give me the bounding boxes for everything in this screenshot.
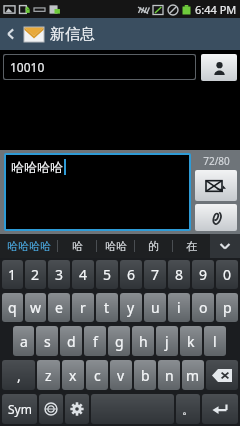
staticText: 5 xyxy=(103,265,112,284)
button[interactable]: 在 xyxy=(173,234,210,258)
staticText: 6 xyxy=(127,265,136,284)
staticText: 哈哈哈哈 xyxy=(7,239,51,253)
staticText: i xyxy=(177,298,181,317)
button[interactable]: l xyxy=(204,326,226,356)
button[interactable] xyxy=(91,394,174,424)
button[interactable]: 哈哈 xyxy=(97,234,134,258)
staticText: , xyxy=(17,366,21,385)
button[interactable]: Expand suggestions xyxy=(210,234,240,258)
staticText: q xyxy=(8,298,17,317)
button[interactable]: c xyxy=(86,360,108,390)
button[interactable]: t xyxy=(96,293,118,322)
button[interactable]: Sym xyxy=(2,394,37,424)
staticText: o xyxy=(199,298,208,317)
button[interactable]: a xyxy=(13,326,34,356)
button[interactable]: 4 xyxy=(72,260,94,289)
button[interactable]: b xyxy=(134,360,156,390)
button[interactable]: 2 xyxy=(25,260,46,289)
button[interactable]: x xyxy=(62,360,84,390)
button[interactable]: 哈 xyxy=(58,234,96,258)
staticText: 新信息 xyxy=(50,25,95,44)
button[interactable]: s xyxy=(36,326,58,356)
button[interactable]: r xyxy=(72,293,94,322)
button[interactable]: u xyxy=(144,293,166,322)
button[interactable]: 0 xyxy=(216,260,238,289)
button[interactable]: k xyxy=(180,326,202,356)
button[interactable]: i xyxy=(168,293,190,322)
staticText: j xyxy=(165,332,169,351)
button[interactable]: Choose contact xyxy=(201,54,237,81)
button[interactable]: 哈哈哈哈 xyxy=(6,155,189,229)
button[interactable]: Attach xyxy=(195,204,237,231)
button[interactable]: g xyxy=(108,326,130,356)
button[interactable]: 3 xyxy=(48,260,70,289)
button[interactable]: 9 xyxy=(192,260,214,289)
button[interactable]: p xyxy=(216,293,238,322)
staticText: d xyxy=(67,332,76,351)
button[interactable]: j xyxy=(156,326,178,356)
staticText: f xyxy=(93,332,98,351)
staticText: 哈哈 xyxy=(105,239,127,253)
staticText: 8 xyxy=(175,265,184,284)
button[interactable]: 1 xyxy=(2,260,23,289)
staticText: w xyxy=(30,298,42,317)
button[interactable]: 。 xyxy=(176,394,200,424)
button[interactable]: v xyxy=(110,360,132,390)
staticText: 10010 xyxy=(10,59,45,75)
staticText: m xyxy=(186,366,200,385)
button[interactable]: 8 xyxy=(168,260,190,289)
button[interactable]: m xyxy=(182,360,204,390)
staticText: h xyxy=(139,332,148,351)
button[interactable]: 10010 xyxy=(4,55,195,79)
button[interactable]: n xyxy=(158,360,180,390)
staticText: 在 xyxy=(186,239,197,253)
button[interactable]: 的 xyxy=(135,234,172,258)
button[interactable]: Back xyxy=(0,23,22,45)
staticText: s xyxy=(44,332,51,351)
button[interactable]: f xyxy=(84,326,106,356)
button[interactable]: Change language xyxy=(39,394,63,424)
button[interactable]: 5 xyxy=(96,260,118,289)
staticText: x xyxy=(69,366,77,385)
button[interactable]: 7 xyxy=(144,260,166,289)
staticText: b xyxy=(141,366,150,385)
staticText: v xyxy=(117,366,125,385)
button[interactable]: y xyxy=(120,293,142,322)
button[interactable]: o xyxy=(192,293,214,322)
staticText: u xyxy=(151,298,160,317)
staticText: a xyxy=(20,332,28,351)
staticText: n xyxy=(165,366,174,385)
staticText: 的 xyxy=(148,239,159,253)
button[interactable]: Backspace xyxy=(206,360,238,390)
staticText: 1 xyxy=(8,265,17,284)
staticText: 9 xyxy=(199,265,208,284)
button[interactable]: 6 xyxy=(120,260,142,289)
button[interactable]: q xyxy=(2,293,23,322)
staticText: 3 xyxy=(55,265,64,284)
button[interactable]: e xyxy=(48,293,70,322)
staticText: z xyxy=(45,366,52,385)
button[interactable]: Enter xyxy=(202,394,238,424)
staticText: p xyxy=(223,298,232,317)
staticText: r xyxy=(80,298,86,317)
staticText: 72/80 xyxy=(203,154,230,168)
button[interactable]: , xyxy=(2,360,35,390)
button[interactable]: 哈哈哈哈 xyxy=(0,234,57,258)
staticText: 哈哈哈哈 xyxy=(11,159,63,175)
staticText: 2 xyxy=(31,265,40,284)
button[interactable]: d xyxy=(60,326,82,356)
button[interactable]: Send xyxy=(195,170,237,201)
button[interactable]: h xyxy=(132,326,154,356)
button[interactable]: Settings xyxy=(65,394,89,424)
staticText: y xyxy=(127,298,135,317)
staticText: 哈 xyxy=(72,239,83,253)
staticText: 。 xyxy=(182,402,194,417)
button[interactable]: w xyxy=(25,293,46,322)
staticText: 7 xyxy=(151,265,160,284)
staticText: g xyxy=(115,332,124,351)
staticText: l xyxy=(213,332,217,351)
button[interactable]: z xyxy=(37,360,60,390)
staticText: k xyxy=(187,332,195,351)
staticText: 4 xyxy=(79,265,88,284)
staticText: 0 xyxy=(223,265,232,284)
